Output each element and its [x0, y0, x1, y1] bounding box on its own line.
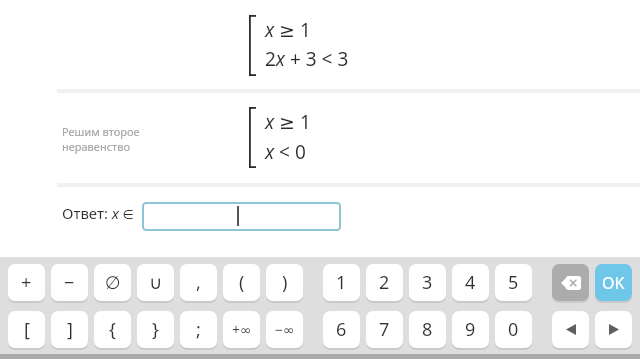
staticText: { — [109, 317, 116, 342]
staticText: x ≥ 1 — [265, 109, 311, 135]
staticText: Решим второе — [62, 124, 140, 139]
staticText: ∅ — [105, 272, 121, 293]
button[interactable] — [595, 311, 632, 348]
button[interactable]: ( — [223, 264, 260, 301]
button[interactable]: [ — [8, 311, 45, 348]
button[interactable]: ; — [180, 311, 217, 348]
staticText: x ≥ 1 — [265, 17, 311, 43]
button[interactable]: 0 — [495, 311, 532, 348]
staticText: 1 — [336, 270, 347, 295]
button[interactable]: } — [137, 311, 174, 348]
button[interactable]: 7 — [366, 311, 403, 348]
staticText: ) — [282, 270, 288, 295]
staticText: 6 — [336, 317, 347, 342]
staticText: 8 — [422, 317, 433, 342]
staticText: 3 — [422, 270, 433, 295]
button[interactable] — [552, 264, 589, 301]
staticText: x < 0 — [265, 139, 306, 165]
button[interactable]: 9 — [452, 311, 489, 348]
staticText: 2x + 3 < 3 — [265, 46, 349, 72]
staticText: ∪ — [149, 272, 163, 293]
button[interactable]: { — [94, 311, 131, 348]
button[interactable]: 4 — [452, 264, 489, 301]
staticText: 2 — [379, 270, 390, 295]
button[interactable] — [142, 202, 341, 231]
button[interactable]: ∅ — [94, 264, 131, 301]
button[interactable]: ] — [51, 311, 88, 348]
staticText: + — [21, 270, 32, 295]
staticText: } — [152, 317, 159, 342]
staticText: 4 — [465, 270, 476, 295]
button[interactable]: +∞ — [223, 311, 260, 348]
staticText: 0 — [508, 317, 519, 342]
staticText: −∞ — [275, 320, 295, 339]
staticText: [ — [24, 317, 30, 342]
staticText: 7 — [379, 317, 390, 342]
staticText: OK — [602, 272, 625, 294]
staticText: ( — [239, 270, 245, 295]
button[interactable]: −∞ — [266, 311, 303, 348]
button[interactable]: 2 — [366, 264, 403, 301]
button[interactable]: OK — [595, 264, 632, 301]
button[interactable]: − — [51, 264, 88, 301]
button[interactable]: 8 — [409, 311, 446, 348]
staticText: 5 — [508, 270, 519, 295]
button[interactable]: + — [8, 264, 45, 301]
button[interactable]: , — [180, 264, 217, 301]
button[interactable]: 6 — [323, 311, 360, 348]
button[interactable]: ) — [266, 264, 303, 301]
staticText: +∞ — [232, 320, 252, 339]
staticText: неравенство — [62, 139, 130, 154]
staticText: , — [196, 270, 201, 295]
staticText: Ответ: x ∈ — [62, 203, 134, 223]
button[interactable]: 3 — [409, 264, 446, 301]
button[interactable]: ∪ — [137, 264, 174, 301]
button[interactable]: 5 — [495, 264, 532, 301]
staticText: ] — [67, 317, 73, 342]
staticText: 9 — [465, 317, 476, 342]
button[interactable]: 1 — [323, 264, 360, 301]
staticText: − — [64, 270, 75, 295]
staticText: ; — [196, 317, 201, 342]
button[interactable] — [552, 311, 589, 348]
